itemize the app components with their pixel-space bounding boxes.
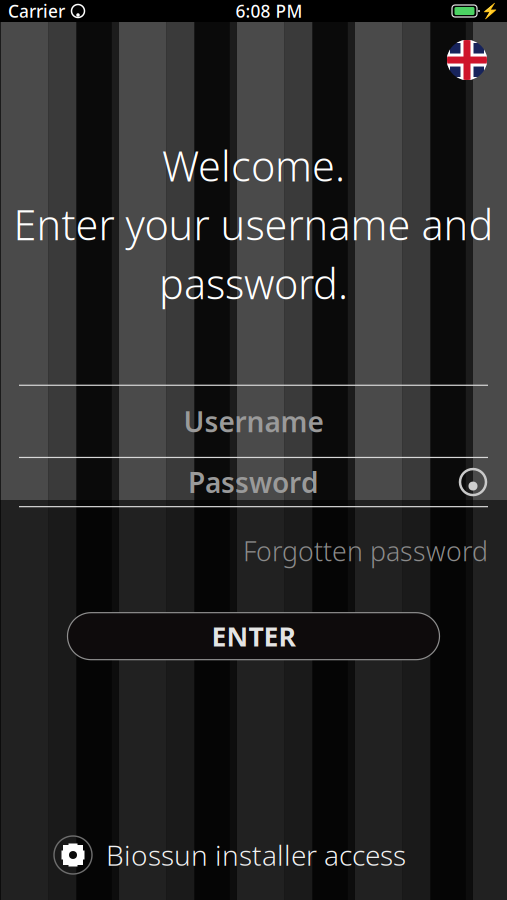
staticText: ENTER: [211, 618, 295, 654]
staticText: Username: [183, 403, 323, 440]
button[interactable]: Language: English: [447, 40, 487, 80]
staticText: Welcome.: [162, 138, 345, 193]
staticText: ⚡: [481, 3, 499, 19]
button[interactable]: Username: [19, 386, 488, 457]
staticText: 6:08 PM: [235, 0, 302, 22]
staticText: password.: [159, 256, 348, 311]
button[interactable]: Password: [19, 458, 488, 506]
staticText: Password: [188, 463, 319, 501]
button[interactable]: Biossun installer access: [54, 836, 406, 874]
button[interactable]: Forgotten password: [243, 533, 488, 569]
staticText: Enter your username and: [13, 197, 493, 252]
staticText: Forgotten password: [243, 533, 488, 569]
button[interactable]: Show password: [458, 467, 488, 497]
staticText: Carrier: [8, 0, 65, 22]
button[interactable]: ENTER: [67, 613, 439, 660]
staticText: Biossun installer access: [106, 836, 406, 874]
